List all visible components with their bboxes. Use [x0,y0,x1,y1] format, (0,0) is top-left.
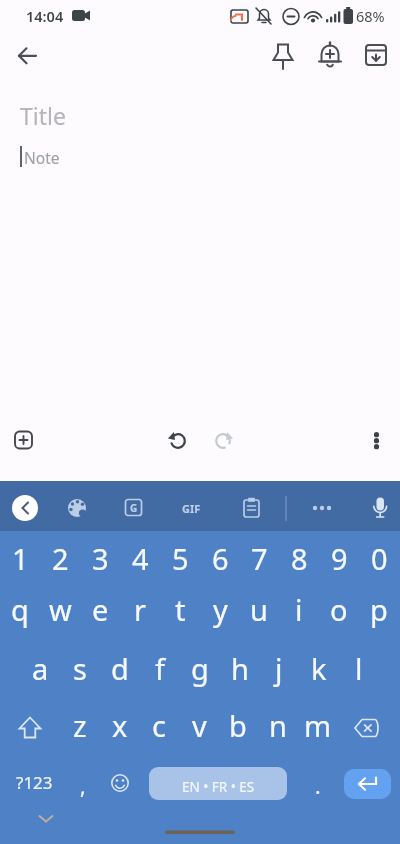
staticText: 9 [331,539,348,578]
button[interactable]: 4 [120,536,160,580]
staticText: 5 [172,539,189,578]
button[interactable]: . [303,764,333,808]
staticText: i [295,590,303,629]
button[interactable]: q [0,587,40,631]
button[interactable]: a [20,646,60,690]
button[interactable] [362,490,398,526]
staticText: r [134,590,146,629]
staticText: 0 [371,539,388,578]
button[interactable] [6,422,42,458]
staticText: p [370,590,388,629]
button[interactable] [344,769,391,799]
button[interactable]: x [100,703,140,747]
button[interactable] [28,806,64,832]
button[interactable]: g [180,646,220,690]
staticText: c [152,706,166,745]
button[interactable]: p [359,587,399,631]
button[interactable] [8,38,46,74]
staticText: 4 [132,539,149,578]
button[interactable] [357,38,395,74]
staticText: t [175,590,186,629]
staticText: m [304,706,332,745]
button[interactable] [12,706,50,750]
button[interactable] [233,490,269,526]
button[interactable]: y [200,587,240,631]
button[interactable]: 9 [319,536,359,580]
button[interactable]: 0 [359,536,399,580]
button[interactable]: 1 [0,536,40,580]
staticText: s [73,649,87,688]
button[interactable] [205,422,241,458]
button[interactable]: 6 [200,536,240,580]
button[interactable]: EN • FR • ES [149,767,287,800]
button[interactable]: G [104,486,164,530]
staticText: u [250,590,268,629]
button[interactable]: 7 [239,536,279,580]
button[interactable]: r [120,587,160,631]
staticText: g [191,649,209,688]
staticText: 8 [291,539,308,578]
staticText: z [73,706,87,745]
staticText: ?123 [16,771,53,794]
staticText: , [80,772,86,801]
staticText: w [49,590,72,629]
button[interactable]: l [339,646,379,690]
button[interactable] [59,490,95,526]
staticText: e [92,590,109,629]
button[interactable]: 3 [80,536,120,580]
staticText: f [155,649,165,688]
button[interactable]: v [179,703,219,747]
button[interactable] [264,38,302,74]
button[interactable]: z [60,703,100,747]
staticText: 2 [52,539,69,578]
button[interactable]: t [160,587,200,631]
staticText: q [11,590,29,629]
staticText: . [315,772,321,801]
button[interactable]: k [299,646,339,690]
button[interactable] [102,761,138,805]
button[interactable]: s [60,646,100,690]
button[interactable]: w [40,587,80,631]
button[interactable] [304,490,340,526]
button[interactable]: 5 [160,536,200,580]
staticText: b [229,706,247,745]
button[interactable]: 2 [40,536,80,580]
staticText: 1 [12,539,29,578]
staticText: k [311,649,327,688]
button[interactable]: ?123 [6,760,62,804]
staticText: 7 [251,539,268,578]
button[interactable]: c [139,703,179,747]
staticText: j [275,649,283,688]
button[interactable]: d [100,646,140,690]
button[interactable]: j [259,646,299,690]
button[interactable] [348,706,386,750]
staticText: G [130,501,138,515]
button[interactable]: GIF [161,486,221,530]
button[interactable]: b [218,703,258,747]
button[interactable]: o [319,587,359,631]
button[interactable]: 8 [279,536,319,580]
staticText: GIF [182,501,201,516]
staticText: 14:04 [26,6,64,26]
staticText: a [32,649,49,688]
button[interactable]: , [68,764,98,808]
button[interactable] [358,422,394,458]
staticText: h [231,649,249,688]
button[interactable] [12,495,38,521]
staticText: 68% [356,6,385,26]
button[interactable]: n [258,703,298,747]
staticText: 6 [212,539,229,578]
staticText: 3 [92,539,109,578]
button[interactable]: u [239,587,279,631]
button[interactable]: i [279,587,319,631]
button[interactable] [160,422,196,458]
staticText: v [192,706,207,745]
staticText: l [355,649,363,688]
button[interactable]: h [220,646,260,690]
button[interactable]: m [298,703,338,747]
button[interactable] [311,38,349,74]
button[interactable]: f [140,646,180,690]
staticText: EN • FR • ES [182,778,255,796]
staticText: n [269,706,287,745]
button[interactable]: e [80,587,120,631]
